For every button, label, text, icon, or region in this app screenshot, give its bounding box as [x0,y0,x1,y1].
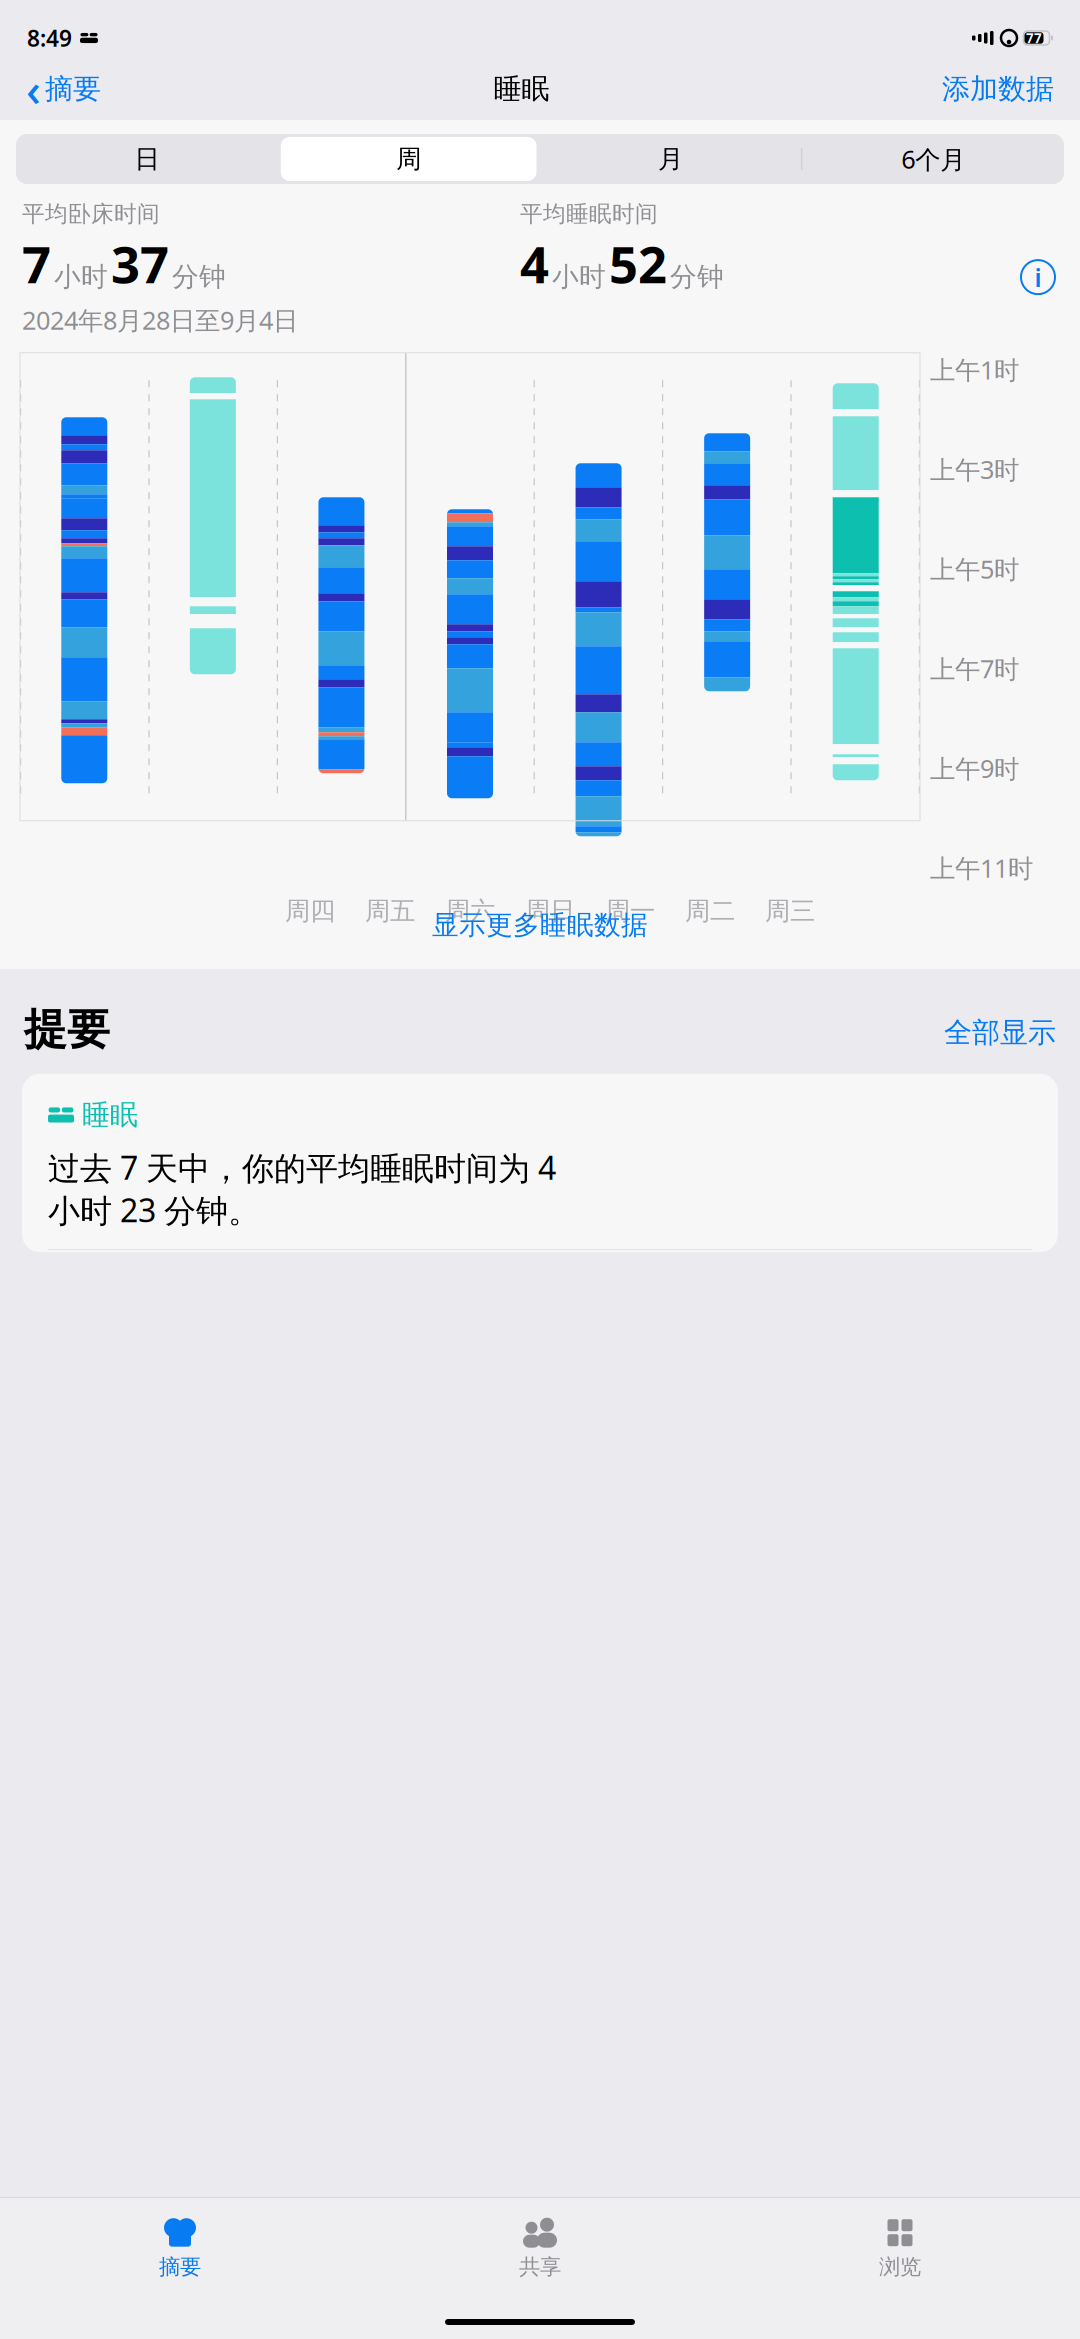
staticText: 浏览 [879,2254,921,2280]
staticText: 提要 [24,1003,110,1056]
staticText: 显示更多睡眠数据 [432,909,648,941]
staticText: 52 [609,230,667,297]
staticText: i [1034,260,1041,294]
staticText: 摘要 [159,2254,201,2280]
button[interactable]: ‹ [8,51,119,127]
staticText: 日 [134,143,159,174]
staticText: 周三 [765,895,815,927]
staticText: 周一 [605,895,655,927]
staticText: 上午7时 [930,652,1019,685]
button[interactable]: 共享 [360,2210,720,2288]
staticText: 小时 [552,260,606,293]
staticText: 小时 [54,260,108,293]
staticText: 周 [396,143,421,174]
staticText: 全部显示 [944,1015,1056,1050]
button[interactable]: 关于睡眠数据 [1018,257,1058,297]
staticText: 共享 [519,2254,561,2280]
button[interactable]: 周 [278,134,540,184]
staticText: 添加数据 [942,72,1054,106]
button[interactable]: 月 [539,137,801,181]
button[interactable]: 显示更多睡眠数据 [0,891,1080,959]
staticText: 77 [1026,29,1042,47]
staticText: 摘要 [45,72,101,106]
staticText: 过去 7 天中，你的平均睡眠时间为 4 小时 23 分钟。 [48,1146,556,1231]
staticText: 平均睡眠时间 [520,200,658,228]
staticText: 周五 [365,895,415,927]
staticText: 上午11时 [930,851,1033,885]
staticText: 分钟 [670,260,724,293]
staticText: 平均卧床时间 [22,200,160,228]
staticText: ‹ [26,59,41,119]
button[interactable]: 6个月 [802,137,1064,181]
staticText: 分钟 [172,260,226,293]
staticText: 周四 [285,895,335,927]
button[interactable]: 摘要 [0,2210,360,2288]
button[interactable]: 全部显示 [944,1009,1056,1056]
staticText: 上午1时 [930,353,1019,386]
staticText: 8:49 [27,23,72,53]
staticText: 周六 [445,895,495,927]
staticText: 上午5时 [930,552,1019,586]
staticText: 2024年8月28日至9月4日 [22,303,298,337]
button[interactable]: 睡眠 [22,1074,1058,1252]
staticText: 6个月 [901,142,965,176]
staticText: 周日 [525,895,575,927]
staticText: 4 [520,230,549,297]
button[interactable]: 浏览 [720,2210,1080,2288]
staticText: 睡眠 [493,72,549,106]
staticText: 上午3时 [930,452,1019,486]
button[interactable]: 日 [16,137,278,181]
staticText: 月 [658,143,683,174]
staticText: 周二 [685,895,735,927]
staticText: 上午9时 [930,751,1019,785]
staticText: 7 [22,230,51,297]
staticText: 睡眠 [82,1098,138,1132]
staticText: 37 [111,230,169,297]
button[interactable]: 添加数据 [924,64,1072,114]
